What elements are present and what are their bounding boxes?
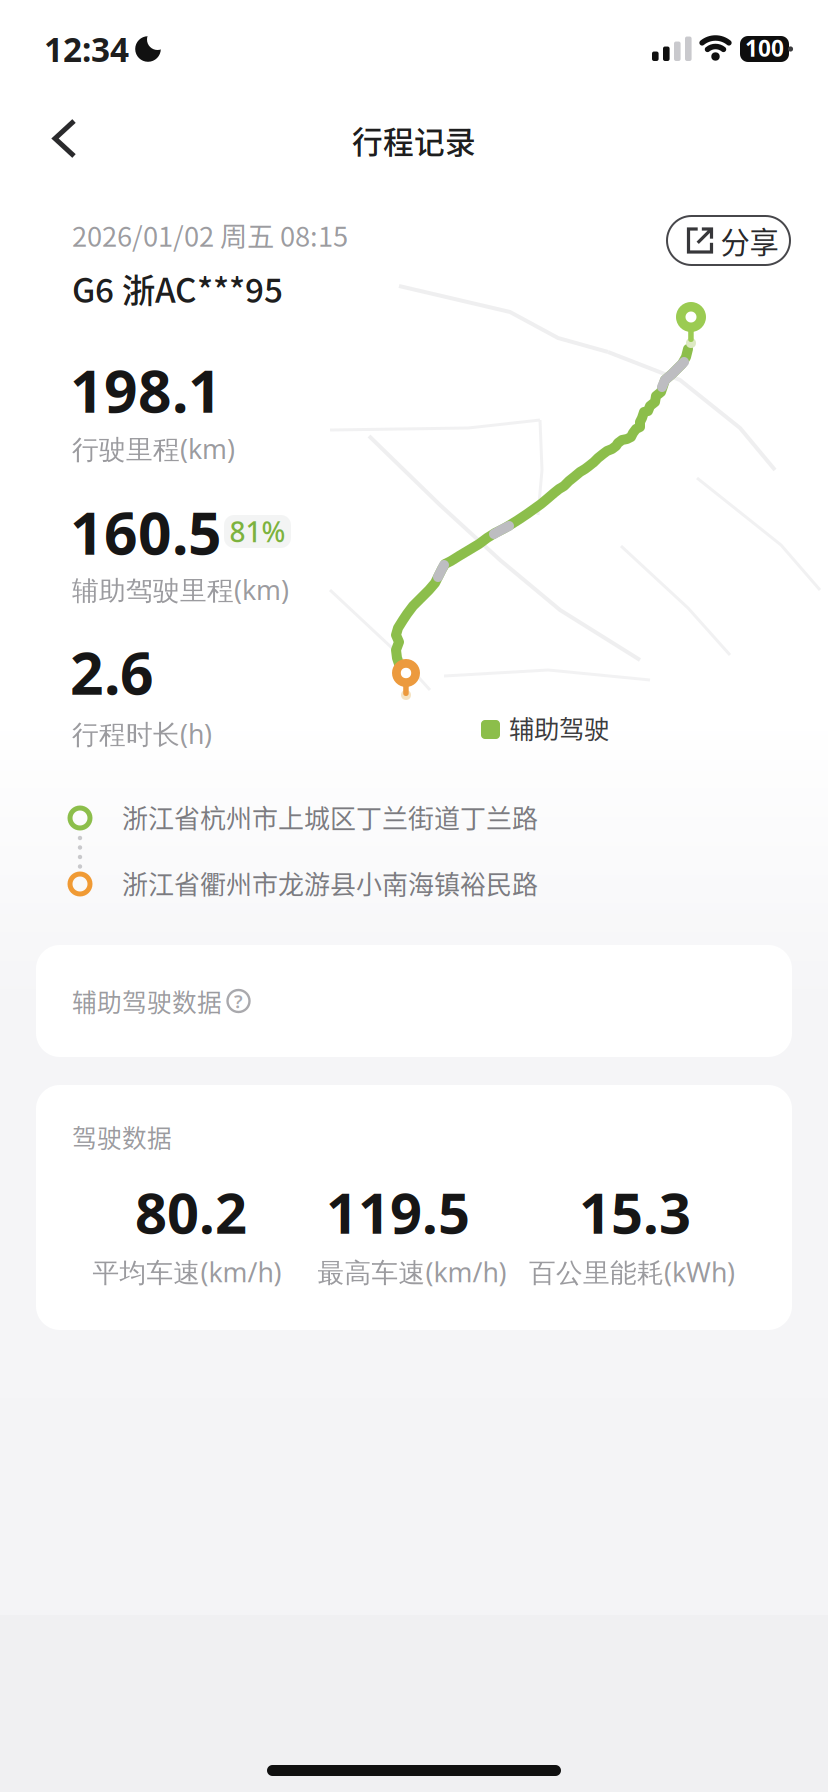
button[interactable]: 分享 <box>667 216 790 265</box>
button[interactable]: 返回 <box>41 107 88 170</box>
staticText: 2.6 <box>70 633 154 711</box>
staticText: 浙江省杭州市上城区丁兰街道丁兰路 <box>122 798 538 836</box>
staticText: 160.5 <box>70 493 222 571</box>
staticText: ? <box>234 989 243 1013</box>
staticText: 平均车速(km/h) <box>92 1254 281 1290</box>
staticText: 辅助驾驶数据 <box>72 983 222 1019</box>
staticText: 80.2 <box>135 1175 247 1249</box>
staticText: 119.5 <box>326 1175 470 1249</box>
staticText: 198.1 <box>70 351 222 429</box>
staticText: 100 <box>745 33 784 63</box>
staticText: 分享 <box>720 219 778 262</box>
staticText: 15.3 <box>579 1175 691 1249</box>
staticText: 行驶里程(km) <box>72 431 235 466</box>
staticText: 2026/01/02 周五 08:15 <box>72 215 348 255</box>
button[interactable]: 辅助驾驶数据 <box>36 945 792 1057</box>
staticText: 驾驶数据 <box>72 1119 172 1155</box>
staticText: 行程时长(h) <box>72 716 212 751</box>
staticText: 辅助驾驶 <box>509 709 609 746</box>
staticText: 辅助驾驶里程(km) <box>72 572 289 607</box>
staticText: 百公里能耗(kWh) <box>529 1254 735 1290</box>
staticText: 81% <box>229 513 285 550</box>
staticText: 行程记录 <box>352 118 476 162</box>
staticText: 浙江省衢州市龙游县小南海镇裕民路 <box>122 864 538 902</box>
staticText: 最高车速(km/h) <box>317 1254 506 1290</box>
staticText: G6 浙AC***95 <box>72 264 283 312</box>
staticText: 12:34 <box>44 27 129 71</box>
